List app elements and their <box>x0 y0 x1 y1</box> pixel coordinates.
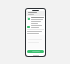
button[interactable] <box>27 25 44 28</box>
button[interactable] <box>26 11 45 16</box>
other: Contact avatar <box>27 17 30 20</box>
button[interactable]: Contact avatar <box>27 17 44 24</box>
button[interactable] <box>27 50 44 53</box>
